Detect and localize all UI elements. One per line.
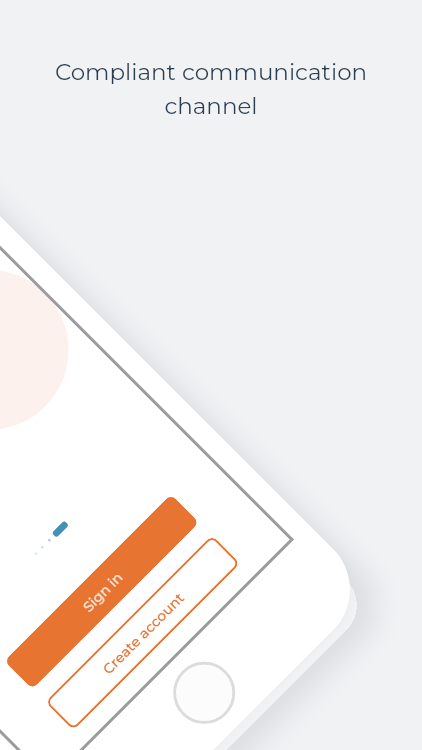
button[interactable]: Home <box>156 645 252 741</box>
button[interactable]: Sign in <box>4 494 199 689</box>
button[interactable]: Create account <box>45 535 240 730</box>
staticText: Sign in <box>79 568 126 615</box>
staticText: Create account <box>99 589 187 677</box>
staticText: Compliant communication channel <box>46 58 376 138</box>
